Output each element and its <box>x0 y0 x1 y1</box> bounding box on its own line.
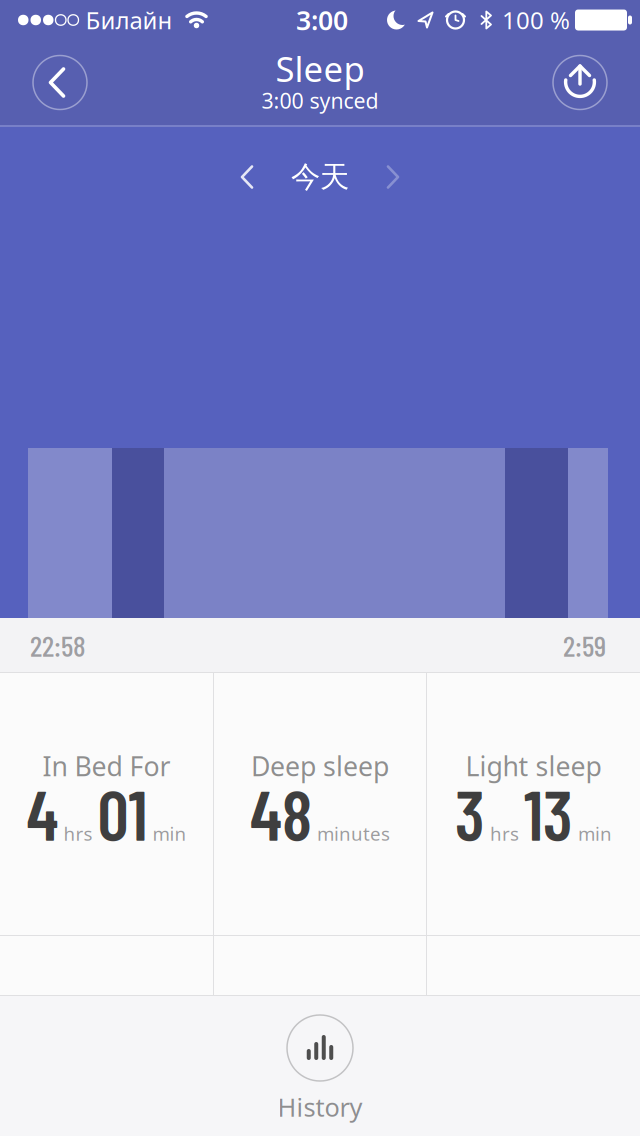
staticText: Билайн <box>85 4 172 36</box>
staticText: 4 <box>26 771 58 855</box>
staticText: min <box>152 821 186 846</box>
staticText: 13 <box>524 771 573 855</box>
staticText: 48 <box>250 771 312 855</box>
staticText: Sleep <box>275 45 364 91</box>
staticText: 今天 <box>291 159 349 195</box>
staticText: 2:59 <box>563 627 606 663</box>
staticText: 01 <box>97 771 147 855</box>
staticText: hrs <box>490 821 519 846</box>
staticText: hrs <box>63 821 92 846</box>
staticText: minutes <box>317 821 390 846</box>
staticText: 3:00 <box>296 2 348 38</box>
staticText: 3:00 synced <box>261 86 378 115</box>
staticText: 22:58 <box>30 627 86 663</box>
staticText: 3 <box>455 771 485 855</box>
staticText: Light sleep <box>465 748 601 784</box>
staticText: 100 % <box>502 4 570 36</box>
staticText: History <box>277 1090 362 1124</box>
staticText: In Bed For <box>42 748 170 784</box>
staticText: Deep sleep <box>251 748 389 784</box>
staticText: min <box>578 821 612 846</box>
